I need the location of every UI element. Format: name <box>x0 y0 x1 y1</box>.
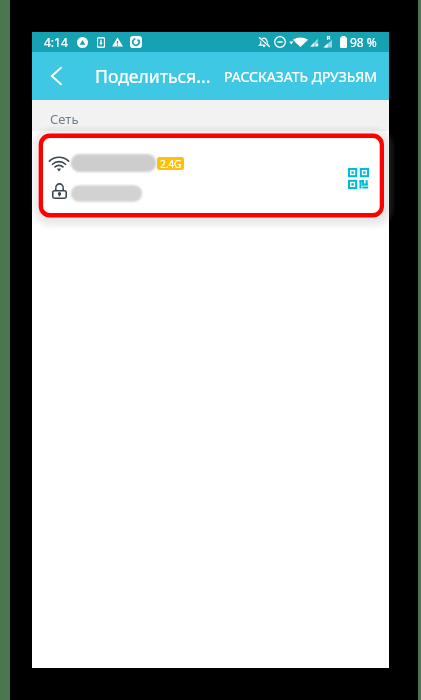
staticText: 98 % <box>350 34 377 50</box>
staticText: 4:14 <box>44 34 68 50</box>
staticText: Сеть <box>50 110 79 128</box>
button[interactable]: 2.4G <box>32 131 389 219</box>
button[interactable]: Show QR code <box>338 158 378 198</box>
staticText: 2.4G <box>160 157 182 170</box>
button[interactable]: РАССКАЗАТЬ ДРУЗЬЯМ <box>212 52 389 100</box>
staticText: Поделиться... <box>95 64 211 88</box>
staticText: РАССКАЗАТЬ ДРУЗЬЯМ <box>224 67 377 86</box>
button[interactable]: Back <box>39 58 75 94</box>
